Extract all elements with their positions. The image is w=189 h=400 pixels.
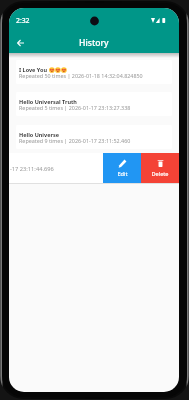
button[interactable]: Delete xyxy=(141,153,179,184)
staticText: Repeated 50 times | 2026-01-18 14:32:04.… xyxy=(19,72,143,79)
button[interactable]: Back xyxy=(13,35,28,50)
staticText: I Love You xyxy=(19,66,48,73)
button[interactable]: Hello Universal Truth xyxy=(16,92,172,116)
staticText: Repeated 5 times | 2026-01-17 23:13:27.3… xyxy=(19,104,131,111)
button[interactable]: Hello Universe xyxy=(16,125,172,149)
staticText: Repeated 9 times | 2026-01-17 23:11:52.4… xyxy=(19,137,131,144)
staticText: Hello Universe xyxy=(19,131,59,138)
button[interactable]: I Love You xyxy=(16,60,172,84)
staticText: Hello Universal Truth xyxy=(19,98,77,105)
staticText: Edit xyxy=(117,170,128,178)
staticText: 2:32 xyxy=(16,16,30,25)
staticText: History xyxy=(79,37,109,49)
staticText: Delete xyxy=(151,170,169,178)
staticText: -17 23:11:44.696 xyxy=(10,165,54,173)
button[interactable]: Edit xyxy=(103,153,141,184)
